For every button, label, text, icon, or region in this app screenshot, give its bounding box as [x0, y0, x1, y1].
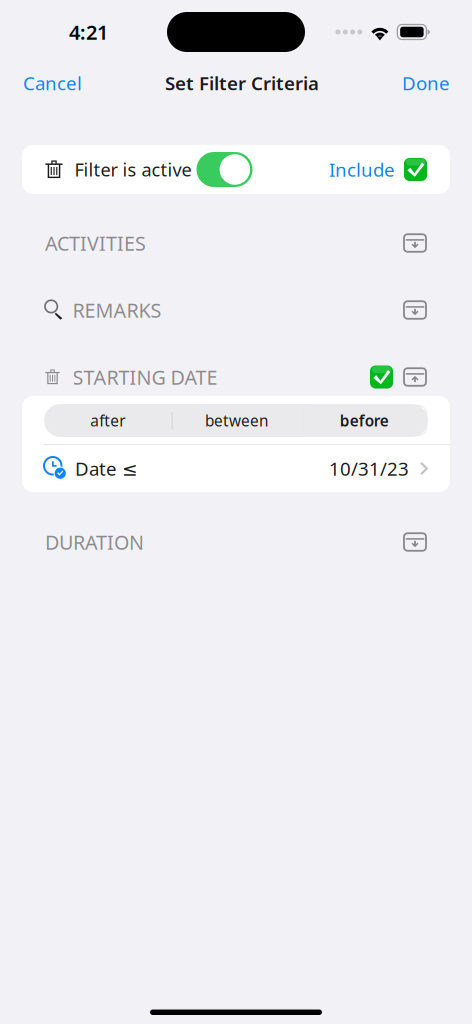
staticText: Date ≤ [75, 456, 138, 481]
staticText: Filter is active [74, 157, 191, 182]
staticText: between [205, 410, 268, 431]
staticText: DURATION [45, 529, 144, 555]
button[interactable]: after [44, 404, 172, 437]
button[interactable]: Cancel [0, 63, 96, 103]
button[interactable]: Expand section [404, 234, 426, 252]
button[interactable]: Expand section [404, 301, 426, 319]
staticText: STARTING DATE [72, 364, 217, 390]
button[interactable]: Expand section [404, 533, 426, 551]
staticText: after [90, 410, 125, 431]
staticText: Include [329, 157, 395, 182]
button[interactable]: Filter is active [0, 145, 472, 194]
staticText: Cancel [23, 71, 82, 95]
button[interactable]: before [300, 404, 428, 437]
staticText: Set Filter Criteria [165, 71, 319, 95]
button[interactable]: Collapse section [404, 368, 426, 386]
staticText: before [340, 410, 389, 431]
staticText: ACTIVITIES [45, 230, 146, 256]
button[interactable]: between [173, 404, 300, 437]
staticText: 4:21 [69, 19, 108, 45]
button[interactable]: Date ≤ [22, 445, 450, 492]
button[interactable]: Done [388, 63, 472, 103]
staticText: REMARKS [72, 297, 161, 323]
staticText: Done [402, 71, 450, 95]
staticText: 10/31/23 [329, 456, 409, 481]
